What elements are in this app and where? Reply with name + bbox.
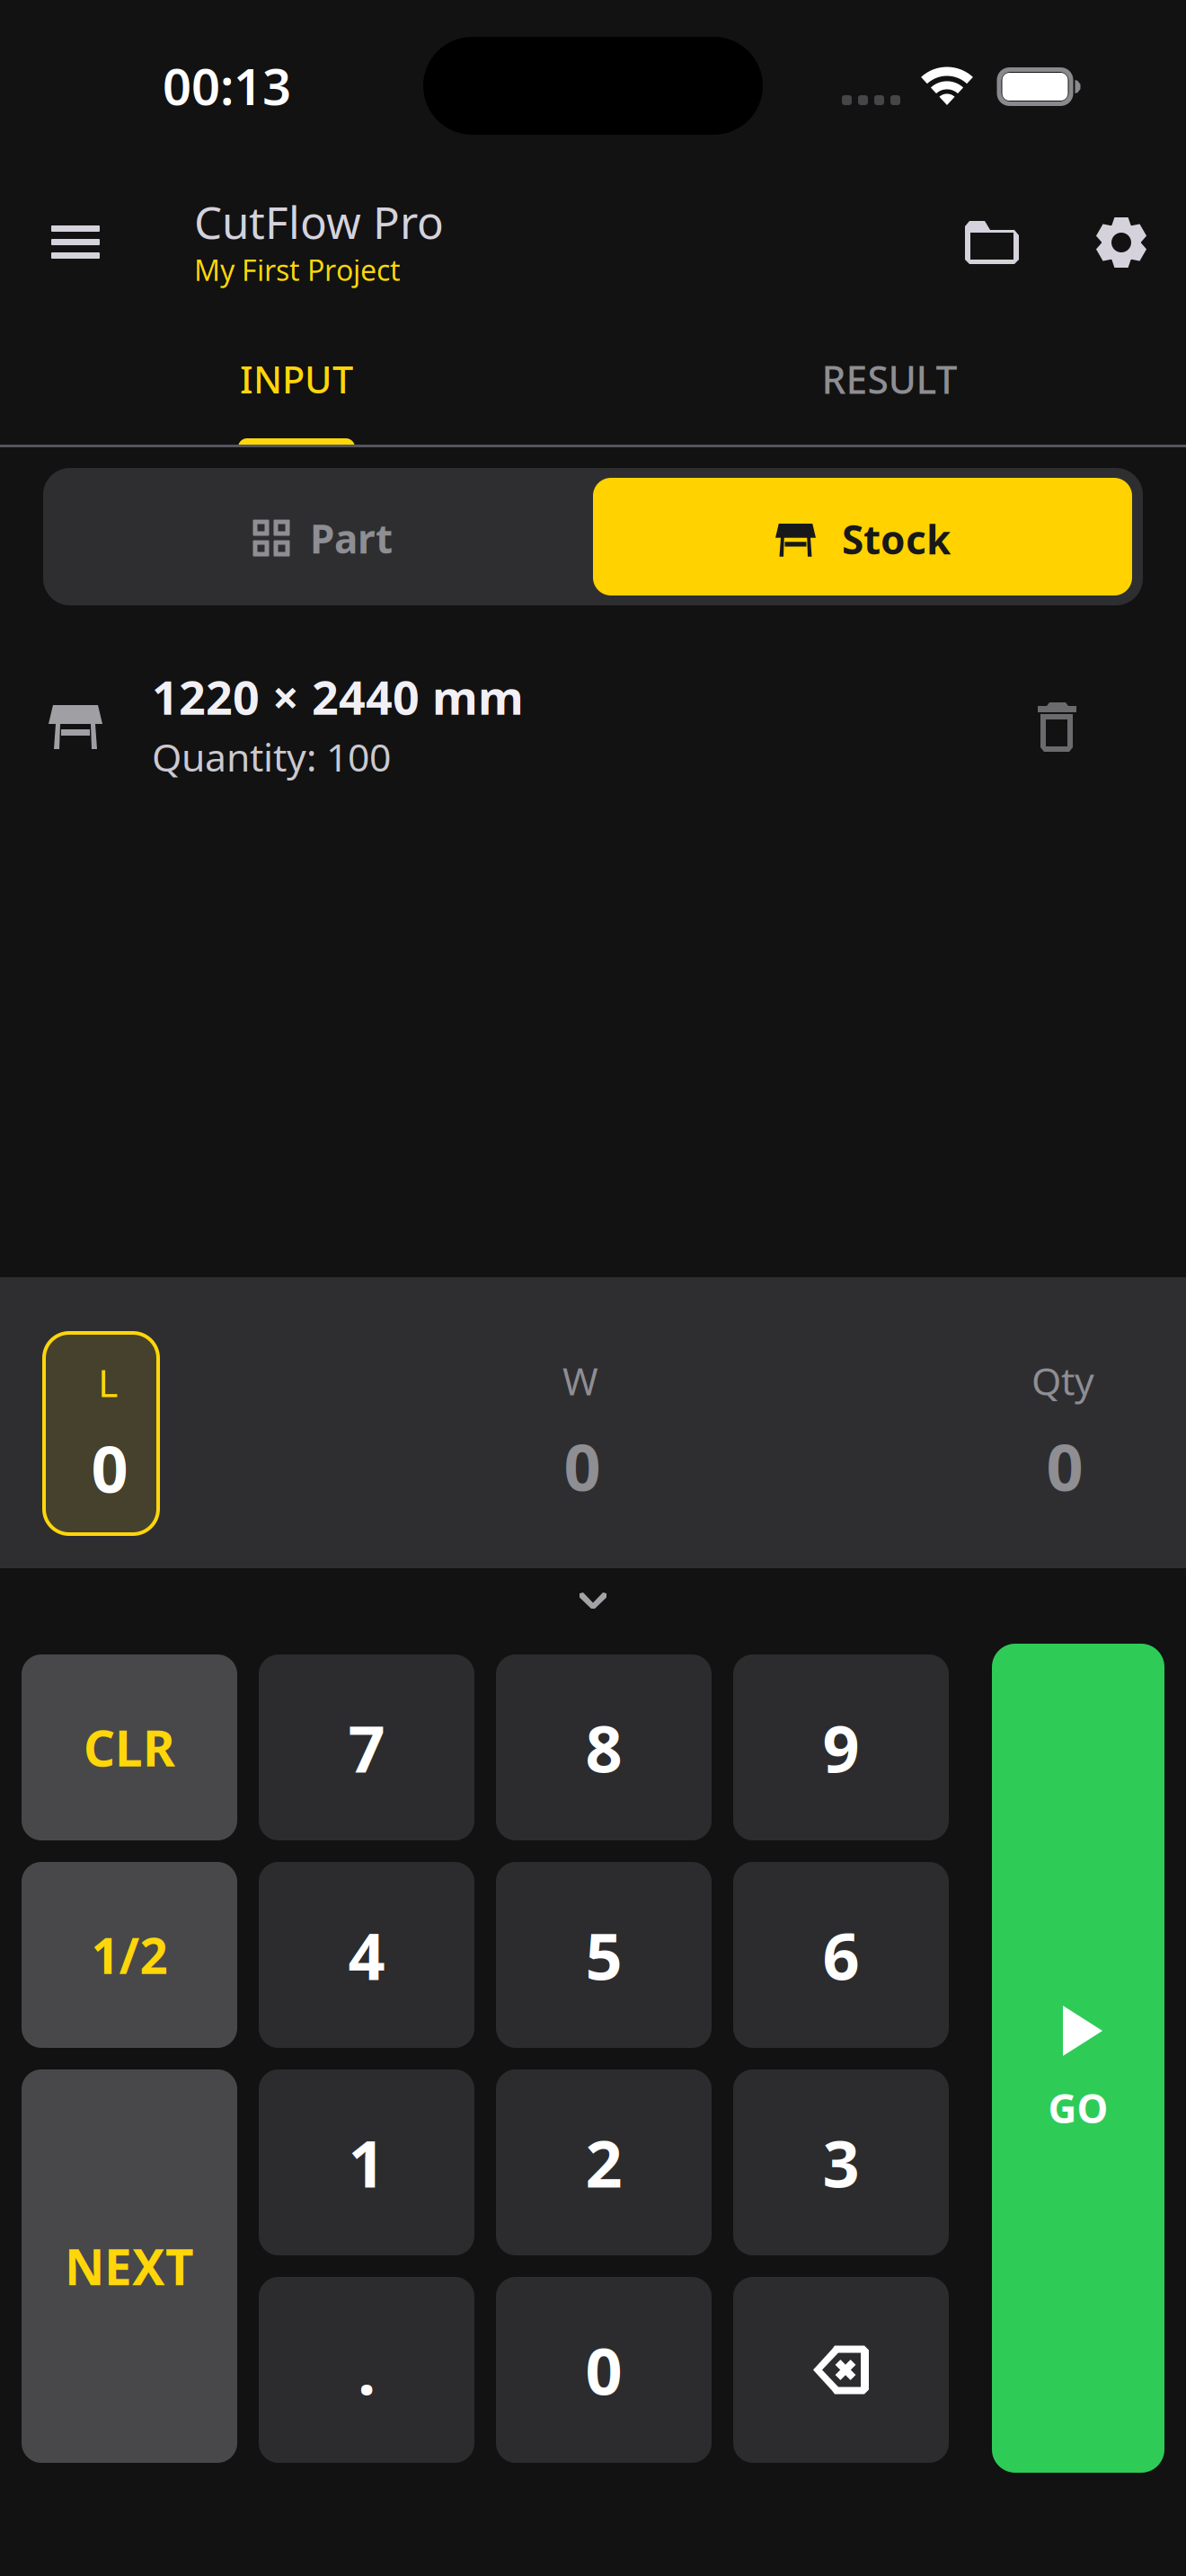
- button[interactable]: Stock: [593, 478, 1132, 595]
- button[interactable]: Delete: [1009, 674, 1105, 781]
- staticText: W: [562, 1355, 598, 1406]
- button[interactable]: 1: [259, 2069, 474, 2255]
- staticText: 9: [823, 1704, 859, 1790]
- staticText: NEXT: [65, 2234, 194, 2299]
- staticText: Part: [310, 512, 393, 564]
- button[interactable]: 8: [496, 1654, 712, 1840]
- button[interactable]: RESULT: [593, 315, 1186, 447]
- staticText: INPUT: [240, 354, 353, 404]
- staticText: 4: [348, 1912, 385, 1998]
- button[interactable]: L: [44, 1333, 161, 1537]
- button[interactable]: Qty: [999, 1331, 1116, 1535]
- button[interactable]: 1220 × 2440 mm: [0, 643, 1186, 807]
- staticText: 0: [564, 1423, 601, 1509]
- button[interactable]: GO: [992, 1644, 1164, 2473]
- staticText: 0: [585, 2327, 622, 2413]
- button[interactable]: CLR: [22, 1654, 237, 1840]
- button[interactable]: 9: [733, 1654, 949, 1840]
- staticText: Qty: [1031, 1355, 1094, 1406]
- button[interactable]: 0: [496, 2277, 712, 2463]
- button[interactable]: 2: [496, 2069, 712, 2255]
- button[interactable]: .: [259, 2277, 474, 2463]
- staticText: 5: [585, 1912, 622, 1998]
- button[interactable]: 1/2: [22, 1862, 237, 2048]
- button[interactable]: 7: [259, 1654, 474, 1840]
- staticText: 1220 × 2440 mm: [152, 666, 524, 728]
- staticText: 8: [585, 1704, 622, 1790]
- button[interactable]: INPUT: [0, 315, 593, 447]
- staticText: 00:13: [163, 52, 291, 119]
- button[interactable]: Hide keypad: [547, 1560, 639, 1641]
- staticText: 6: [823, 1912, 859, 1998]
- staticText: RESULT: [822, 354, 957, 405]
- button[interactable]: W: [517, 1331, 633, 1535]
- button[interactable]: 4: [259, 1862, 474, 2048]
- staticText: 2: [585, 2119, 622, 2205]
- staticText: .: [358, 2327, 376, 2413]
- button[interactable]: Settings: [1072, 193, 1171, 292]
- button[interactable]: Part: [54, 478, 593, 595]
- staticText: My First Project: [194, 251, 401, 289]
- button[interactable]: NEXT: [22, 2069, 237, 2463]
- staticText: Quantity: 100: [152, 731, 391, 782]
- staticText: 0: [1046, 1423, 1083, 1509]
- button[interactable]: 6: [733, 1862, 949, 2048]
- staticText: 1/2: [91, 1922, 168, 1988]
- staticText: CLR: [84, 1715, 175, 1780]
- staticText: 3: [823, 2119, 859, 2205]
- staticText: CutFlow Pro: [194, 192, 444, 251]
- button[interactable]: 3: [733, 2069, 949, 2255]
- button[interactable]: 5: [496, 1862, 712, 2048]
- button[interactable]: Backspace: [733, 2277, 949, 2463]
- staticText: 1: [348, 2119, 385, 2205]
- staticText: 0: [91, 1425, 128, 1511]
- staticText: 7: [348, 1704, 385, 1790]
- staticText: L: [98, 1357, 118, 1408]
- staticText: GO: [1048, 2082, 1108, 2134]
- button[interactable]: Projects: [938, 194, 1046, 291]
- staticText: Stock: [842, 513, 951, 565]
- button[interactable]: Menu: [19, 192, 132, 292]
